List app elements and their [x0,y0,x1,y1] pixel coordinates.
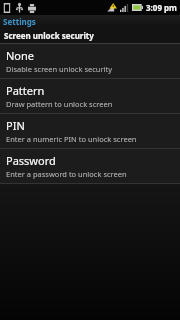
button[interactable]: PIN [0,114,180,148]
other: Printer [28,4,36,13]
staticText: PIN [6,118,25,133]
staticText: Enter a numeric PIN to unlock screen [6,134,137,144]
staticText: Pattern [6,83,45,98]
staticText: Disable screen unlock security [6,64,113,74]
staticText: Settings [3,16,36,27]
other: Signal strength [120,4,129,12]
staticText: Enter a password to unlock screen [6,169,127,179]
staticText: None [6,48,35,63]
other: SIM card [3,3,11,13]
staticText: Screen unlock security [4,30,94,41]
other: Battery [132,4,143,11]
staticText: Password [6,153,56,168]
other: USB connected [16,3,23,13]
button[interactable]: Password [0,149,180,183]
button[interactable]: Pattern [0,79,180,113]
other: Wi-Fi warning [107,3,117,12]
staticText: Draw pattern to unlock screen [6,99,113,109]
staticText: 3:09 pm [146,2,177,13]
button[interactable]: None [0,44,180,78]
